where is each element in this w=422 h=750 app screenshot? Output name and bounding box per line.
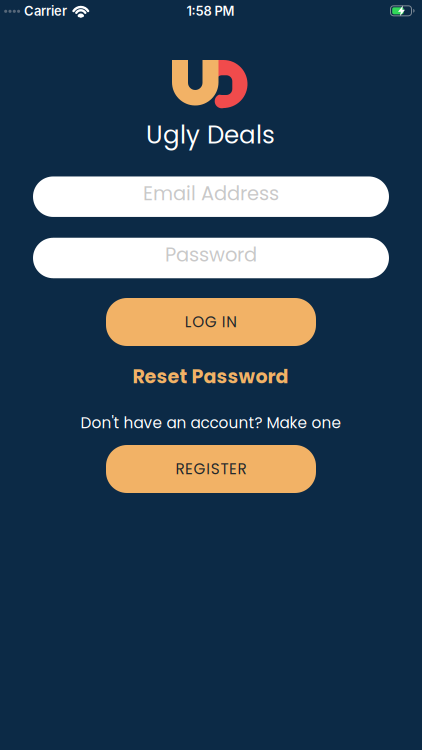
button[interactable]: LOG IN [106, 298, 316, 346]
staticText: Password [165, 241, 257, 268]
button[interactable]: Password [33, 238, 389, 278]
staticText: REGISTER [175, 458, 247, 480]
staticText: Don't have an account? Make one [80, 412, 341, 434]
staticText: Carrier [24, 3, 67, 19]
button[interactable]: REGISTER [106, 445, 316, 493]
button[interactable]: Email Address [33, 176, 389, 217]
staticText: LOG IN [185, 311, 237, 333]
staticText: Reset Password [132, 363, 288, 390]
staticText: Ugly Deals [146, 118, 275, 152]
staticText: Email Address [143, 180, 279, 207]
staticText: 1:58 PM [186, 3, 234, 19]
button[interactable]: Reset Password [132, 363, 288, 390]
